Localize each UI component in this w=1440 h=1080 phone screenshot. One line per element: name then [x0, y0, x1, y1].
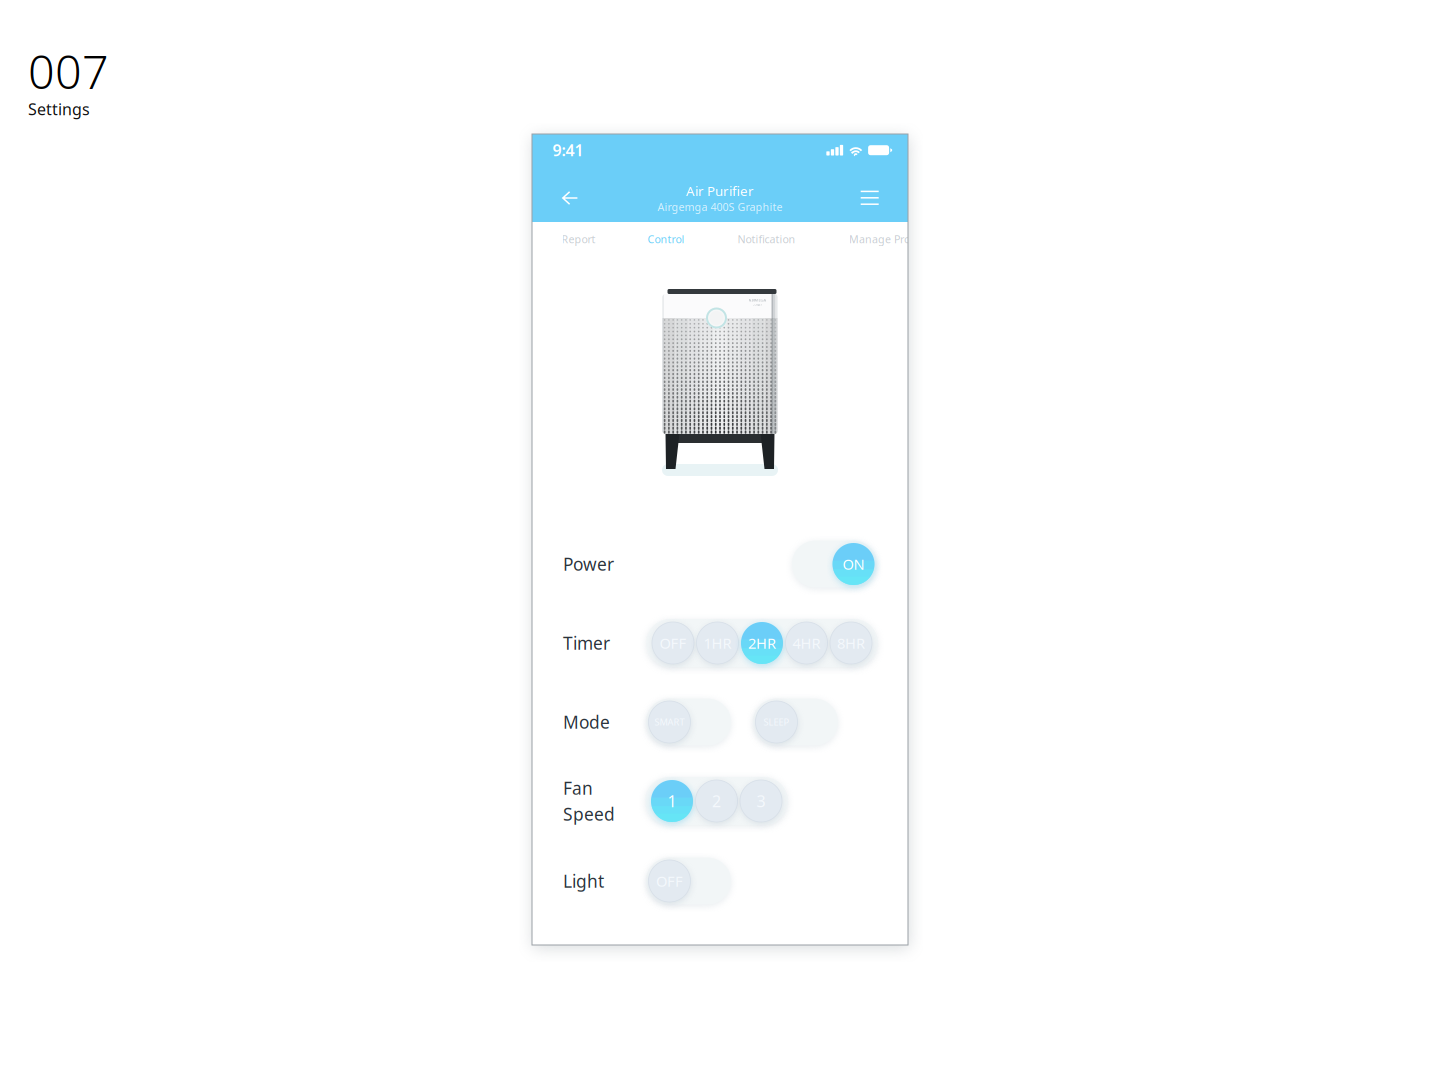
staticText: OFF	[659, 633, 686, 653]
staticText: Control	[647, 232, 684, 246]
button[interactable]: 1HR	[696, 622, 738, 664]
staticText: Power	[563, 552, 614, 575]
button[interactable]: Control	[636, 222, 696, 256]
staticText: Light	[563, 869, 604, 892]
staticText: 4HR	[792, 633, 820, 653]
staticText: 3	[756, 790, 765, 812]
staticText: SMART	[654, 716, 684, 728]
button[interactable]: 2HR	[741, 622, 783, 664]
staticText: Timer	[563, 631, 610, 654]
button[interactable]: Manage Product	[837, 222, 945, 256]
button[interactable]: 8HR	[830, 622, 872, 664]
button[interactable]: Notification	[726, 222, 807, 256]
button[interactable]: 1	[651, 780, 693, 822]
button[interactable]: Back	[548, 176, 592, 220]
staticText: Report	[561, 232, 595, 246]
button[interactable]: Menu	[848, 176, 892, 220]
staticText: Settings	[28, 98, 90, 120]
staticText: Notification	[737, 232, 795, 246]
button[interactable]: OFF	[652, 622, 694, 664]
staticText: SLEEP	[763, 716, 789, 728]
staticText: Airgemga 400S Graphite	[657, 200, 782, 214]
staticText: AIRMEGA	[748, 297, 766, 303]
button[interactable]: OFF	[646, 857, 731, 904]
button[interactable]: 3	[740, 780, 782, 822]
staticText: Mode	[563, 710, 610, 733]
staticText: COWAY	[752, 303, 762, 307]
staticText: 1HR	[703, 633, 731, 653]
staticText: 2	[712, 790, 721, 812]
staticText: 1	[667, 790, 676, 812]
button[interactable]: Report	[550, 222, 607, 256]
staticText: 2HR	[748, 633, 776, 653]
staticText: 007	[28, 40, 109, 102]
staticText: Fan	[563, 776, 593, 799]
button[interactable]: SLEEP	[753, 698, 838, 745]
button[interactable]: ON	[792, 540, 877, 587]
staticText: 8HR	[837, 633, 865, 653]
staticText: Manage Product	[849, 232, 933, 246]
staticText: ON	[842, 554, 864, 574]
button[interactable]: SMART	[646, 698, 731, 745]
staticText: Speed	[563, 802, 615, 825]
button[interactable]: 4HR	[785, 622, 827, 664]
button[interactable]: 2	[695, 780, 737, 822]
staticText: Air Purifier	[686, 182, 754, 200]
staticText: OFF	[656, 871, 683, 891]
staticText: 9:41	[552, 139, 583, 161]
